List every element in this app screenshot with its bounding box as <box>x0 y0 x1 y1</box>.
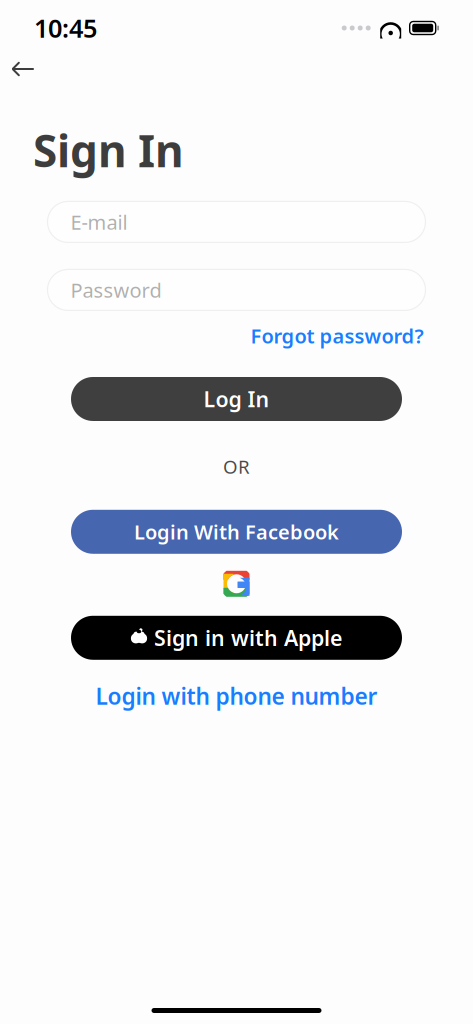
button[interactable]: Login with phone number <box>89 676 383 716</box>
staticText: 10:45 <box>34 11 97 45</box>
button[interactable]: Log In <box>71 377 402 421</box>
staticText: Sign In <box>33 121 184 179</box>
staticText: Password <box>70 277 161 303</box>
staticText: Log In <box>203 385 269 413</box>
button[interactable]: Sign in with Google <box>216 564 256 604</box>
staticText: Login With Facebook <box>134 518 339 545</box>
button[interactable]: Forgot password? <box>248 319 425 352</box>
button[interactable]: Back <box>0 49 46 89</box>
staticText: Forgot password? <box>250 322 423 349</box>
staticText: Login with phone number <box>95 681 377 711</box>
staticText: OR <box>223 454 250 479</box>
button[interactable]: Sign in with Apple <box>71 616 402 660</box>
button[interactable]: Login With Facebook <box>71 510 402 554</box>
staticText: E-mail <box>70 209 127 235</box>
staticText: Sign in with Apple <box>154 624 342 652</box>
